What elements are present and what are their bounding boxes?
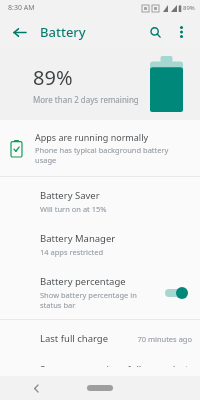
staticText: Show battery percentage in status bar xyxy=(40,290,158,310)
staticText: Screen usage since full charge xyxy=(40,363,167,367)
button[interactable]: Battery Saver xyxy=(0,180,200,223)
button[interactable]: Back xyxy=(28,380,44,396)
button[interactable]: Apps are running normally xyxy=(0,120,200,176)
staticText: Battery Manager xyxy=(40,232,116,245)
button[interactable]: Screen usage since full charge xyxy=(0,354,200,376)
button[interactable]: More options xyxy=(170,21,192,43)
staticText: Battery percentage xyxy=(40,275,126,288)
button[interactable]: Back xyxy=(8,21,30,43)
staticText: 14 apps restricted xyxy=(40,247,104,257)
button[interactable]: Home xyxy=(87,385,113,391)
staticText: 89% xyxy=(33,64,73,91)
staticText: 70 minutes ago xyxy=(137,334,192,344)
staticText: Battery Saver xyxy=(40,189,100,202)
staticText: Will turn on at 15% xyxy=(40,204,107,214)
staticText: More than 2 days remaining xyxy=(33,94,139,105)
staticText: Phone has typical background battery usa… xyxy=(35,145,186,165)
button[interactable]: Search xyxy=(144,21,166,43)
staticText: Battery xyxy=(40,23,86,41)
button[interactable]: Last full charge xyxy=(0,323,200,354)
button[interactable]: Battery Manager xyxy=(0,223,200,266)
staticText: 1 min xyxy=(172,363,192,367)
button[interactable]: Battery percentage xyxy=(0,266,200,319)
staticText: Last full charge xyxy=(40,332,132,345)
staticText: Apps are running normally xyxy=(35,131,149,143)
staticText: 89% xyxy=(183,4,195,12)
staticText: 8:30 AM xyxy=(8,3,35,13)
